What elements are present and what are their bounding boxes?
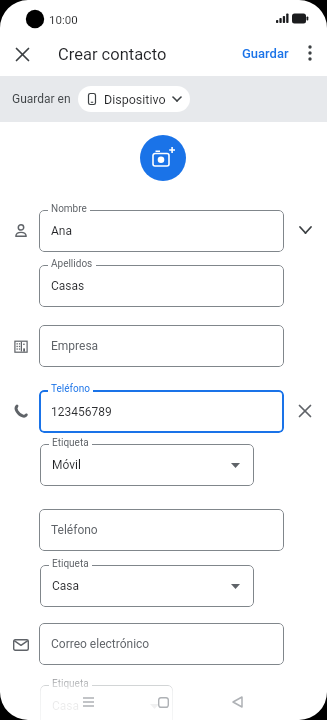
button[interactable]: Correo electrónico	[39, 623, 284, 665]
button[interactable]: Guardar	[242, 46, 289, 61]
button[interactable]: Móvil	[40, 444, 254, 486]
staticText: Apellidos	[51, 258, 93, 270]
staticText: Etiqueta	[52, 437, 89, 449]
button[interactable]: Ana	[39, 210, 284, 252]
staticText: Etiqueta	[52, 558, 89, 570]
button[interactable]	[299, 226, 312, 234]
staticText: Etiqueta	[52, 678, 89, 690]
staticText: Teléfono	[51, 383, 90, 395]
button[interactable]	[16, 48, 29, 61]
staticText: Crear contacto	[58, 45, 167, 64]
button[interactable]	[82, 696, 95, 708]
staticText: Teléfono	[51, 523, 98, 537]
button[interactable]: Casa	[40, 565, 254, 607]
button[interactable]	[140, 135, 186, 181]
button[interactable]	[158, 697, 169, 708]
staticText: Dispositivo	[104, 92, 166, 107]
staticText: 123456789	[51, 405, 112, 419]
staticText: Móvil	[52, 458, 81, 472]
button[interactable]: 123456789	[39, 390, 284, 433]
button[interactable]: Casas	[39, 265, 284, 307]
staticText: Ana	[51, 224, 72, 238]
staticText: Casa	[52, 699, 80, 713]
staticText: Casa	[52, 579, 80, 593]
staticText: 10:00	[49, 13, 78, 26]
button[interactable]	[299, 405, 311, 417]
staticText: Nombre	[51, 203, 87, 215]
staticText: Empresa	[51, 339, 99, 353]
button[interactable]	[303, 45, 317, 61]
button[interactable]: Dispositivo	[78, 86, 190, 112]
button[interactable]: Casa	[40, 685, 173, 720]
staticText: Guardar en	[12, 92, 71, 106]
staticText: Guardar	[242, 46, 289, 61]
staticText: Correo electrónico	[51, 637, 150, 651]
button[interactable]: Empresa	[39, 325, 284, 367]
button[interactable]	[232, 696, 243, 708]
staticText: Casas	[51, 279, 85, 293]
button[interactable]: Teléfono	[39, 509, 284, 551]
